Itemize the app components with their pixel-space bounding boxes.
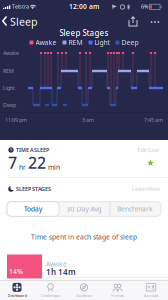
button[interactable]: Guidance: [67, 281, 100, 300]
staticText: TIME ASLEEP: [16, 146, 49, 154]
staticText: SLEEP STAGES: [16, 185, 51, 193]
staticText: Guidance: [76, 293, 92, 298]
staticText: 7: [8, 152, 17, 173]
staticText: 22: [28, 152, 46, 173]
staticText: 6%: [141, 3, 148, 10]
staticText: Deep: [121, 38, 138, 47]
button[interactable]: Dashboard: [0, 281, 33, 300]
button[interactable]: Learn More: [132, 185, 160, 193]
staticText: Sleep: [10, 14, 38, 29]
staticText: Awake: [46, 260, 67, 268]
staticText: 11:09 pm: [5, 116, 27, 124]
staticText: Learn More: [132, 185, 160, 193]
staticText: REM: [3, 67, 14, 75]
staticText: REM: [68, 38, 82, 47]
staticText: Challenges: [41, 293, 60, 298]
button[interactable]: Sleep: [2, 14, 38, 29]
staticText: Deep: [3, 101, 16, 109]
staticText: Awake: [35, 38, 56, 47]
staticText: 3 am: [82, 116, 94, 124]
button[interactable]: Benchmark: [110, 202, 160, 216]
button[interactable]: [151, 21, 159, 23]
button[interactable]: Edit Goal: [137, 146, 158, 154]
staticText: Time spent in each stage of sleep: [31, 233, 137, 241]
staticText: Edit Goal: [137, 146, 158, 154]
staticText: Awake: [3, 49, 19, 57]
staticText: Today: [24, 205, 42, 213]
staticText: hr: [19, 163, 26, 172]
button[interactable]: Friends: [101, 281, 134, 300]
staticText: 12:00 am: [69, 2, 99, 11]
staticText: min: [48, 163, 60, 172]
button[interactable]: [128, 16, 138, 26]
staticText: Friends: [111, 293, 124, 298]
staticText: Telstra: [12, 3, 29, 10]
staticText: 14%: [9, 267, 23, 276]
button[interactable]: Account: [134, 281, 167, 300]
staticText: Light: [3, 84, 15, 92]
staticText: 30 Day Avg: [66, 205, 101, 213]
button[interactable]: Challenges: [34, 281, 67, 300]
staticText: 1h 14m: [46, 267, 76, 277]
staticText: Benchmark: [117, 205, 153, 213]
button[interactable]: Today: [7, 202, 59, 216]
staticText: Dashboard: [7, 293, 26, 298]
button[interactable]: 30 Day Avg: [59, 202, 109, 216]
staticText: Light: [94, 38, 109, 47]
staticText: 7:45 am: [144, 116, 163, 124]
staticText: Account: [144, 293, 158, 298]
staticText: Sleep Stages: [59, 28, 108, 38]
